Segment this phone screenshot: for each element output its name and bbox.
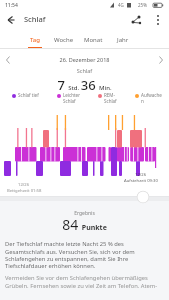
staticText: Schlaf	[0, 67, 169, 74]
staticText: Vermeiden Sie vor dem Schlafengehen über…	[5, 274, 165, 289]
button[interactable]	[135, 189, 151, 205]
staticText: Aufwache	[141, 92, 162, 98]
staticText: n	[141, 98, 144, 104]
button[interactable]: Woche	[49, 32, 78, 48]
staticText: Schlaf	[104, 98, 117, 104]
staticText: 84 Punkte	[0, 215, 169, 234]
staticText: Tag	[30, 36, 40, 44]
staticText: 7 Std. 36 Min.	[0, 76, 169, 94]
staticText: Woche	[54, 36, 74, 44]
staticText: 25%	[138, 2, 147, 8]
staticText: 12/26	[135, 172, 147, 178]
staticText: Bettgehzeit 01:58	[7, 188, 42, 194]
button[interactable]	[2, 12, 18, 28]
staticText: Monat	[84, 36, 103, 44]
button[interactable]: Monat	[78, 32, 108, 48]
button[interactable]: Jahr	[108, 32, 138, 48]
staticText: Schlaf tief	[18, 92, 39, 98]
staticText: 26. Dezember 2018	[0, 56, 169, 63]
button[interactable]	[128, 12, 144, 28]
staticText: REM-	[104, 92, 115, 98]
button[interactable]	[2, 54, 14, 66]
staticText: Aufstehzeit 09:30	[124, 178, 158, 184]
staticText: 11:54	[5, 2, 18, 9]
staticText: Ergebnis	[0, 210, 169, 217]
staticText: Schlaf	[63, 98, 76, 104]
button[interactable]	[155, 54, 167, 66]
button[interactable]: Tag	[20, 32, 49, 48]
staticText: Der Tiefschlaf machte letzte Nacht 25 % …	[5, 240, 165, 269]
staticText: Schlaf	[24, 14, 46, 24]
staticText: 12/26	[18, 182, 30, 188]
staticText: Jahr	[117, 36, 129, 44]
staticText: 4G	[118, 2, 124, 8]
button[interactable]	[150, 12, 166, 28]
staticText: Leichter	[63, 92, 81, 98]
